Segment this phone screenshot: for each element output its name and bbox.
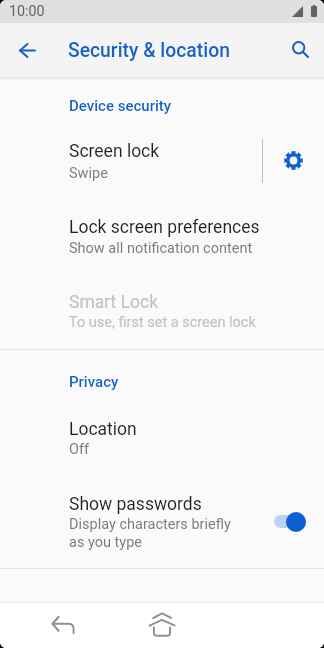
button[interactable]: Search bbox=[276, 25, 324, 73]
staticText: Show all notification content bbox=[69, 240, 253, 257]
staticText: Device security bbox=[69, 97, 172, 115]
button[interactable]: Navigate up bbox=[3, 26, 51, 74]
staticText: Display characters briefly as you type bbox=[69, 516, 231, 550]
staticText: Show passwords bbox=[69, 494, 202, 515]
staticText: Screen lock bbox=[69, 141, 160, 162]
staticText: Location bbox=[69, 419, 137, 440]
button[interactable] bbox=[0, 480, 324, 564]
staticText: To use, first set a screen lock bbox=[69, 314, 256, 331]
button[interactable]: Home bbox=[132, 602, 192, 648]
staticText: Privacy bbox=[69, 373, 119, 391]
staticText: 10:00 bbox=[9, 3, 45, 20]
staticText: Off bbox=[69, 441, 90, 458]
staticText: Lock screen preferences bbox=[69, 217, 260, 238]
button[interactable] bbox=[0, 126, 254, 196]
button[interactable] bbox=[0, 404, 324, 474]
button[interactable]: Back bbox=[18, 602, 108, 648]
staticText: Smart Lock bbox=[69, 292, 159, 313]
button[interactable] bbox=[0, 278, 324, 348]
staticText: Security & location bbox=[68, 39, 230, 62]
button[interactable]: Show passwords toggle bbox=[264, 500, 316, 544]
staticText: Swipe bbox=[69, 165, 108, 182]
button[interactable]: Screen lock settings bbox=[254, 126, 324, 196]
button[interactable] bbox=[0, 203, 324, 273]
